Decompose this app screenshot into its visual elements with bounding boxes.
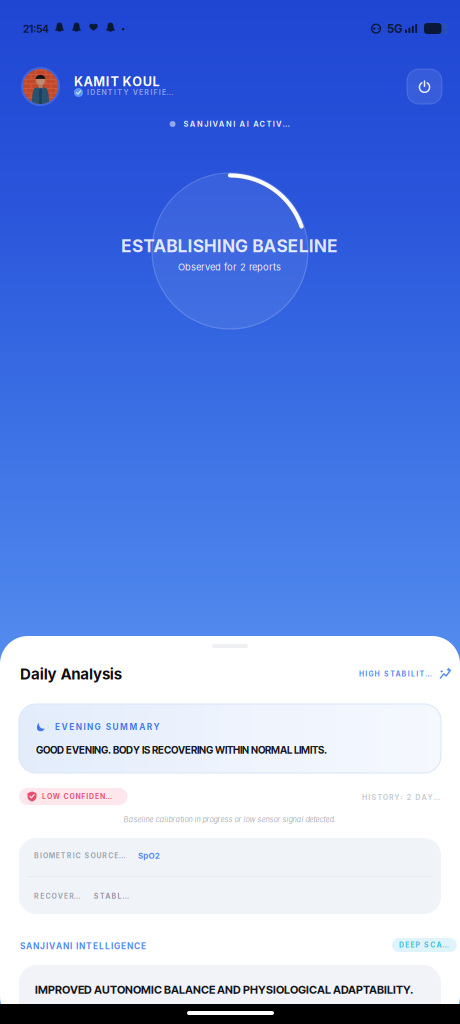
staticText: STABLE (94, 892, 129, 900)
staticText: SpO2 (138, 851, 161, 861)
staticText: Baseline calibration in progress or low … (123, 815, 336, 824)
staticText: EVENING SUMMARY (55, 722, 162, 732)
staticText: HIGH STABILITY (359, 670, 433, 678)
button[interactable]: DEEP SCAN (392, 938, 457, 952)
staticText: LOW CONFIDENCE (42, 792, 118, 801)
staticText: DEEP SCAN (399, 941, 450, 949)
button[interactable]: HIGH STABILITY (359, 666, 452, 682)
staticText: Observed for 2 reports (178, 261, 282, 273)
staticText: BIOMETRIC SOURCES: (34, 852, 129, 860)
staticText: SANJIVANI INTELLIGENCE (20, 941, 148, 951)
staticText: ESTABLISHING BASELINE (121, 235, 339, 256)
staticText: GOOD EVENING. BODY IS RECOVERING WITHIN … (36, 744, 327, 756)
staticText: Daily Analysis (20, 665, 123, 683)
staticText: IDENTITY VERIFIED (87, 88, 174, 97)
staticText: SANJIVANI AI ACTIVE (184, 119, 290, 128)
staticText: HISTORY: 2 DAYS (362, 793, 441, 802)
staticText: 5G (387, 22, 404, 36)
staticText: RECOVERY: (34, 892, 85, 900)
staticText: KAMIT KOUL (74, 74, 161, 89)
button[interactable]: Power (407, 69, 442, 104)
staticText: IMPROVED AUTONOMIC BALANCE AND PHYSIOLOG… (35, 983, 413, 996)
staticText: 21:54 (23, 23, 50, 35)
